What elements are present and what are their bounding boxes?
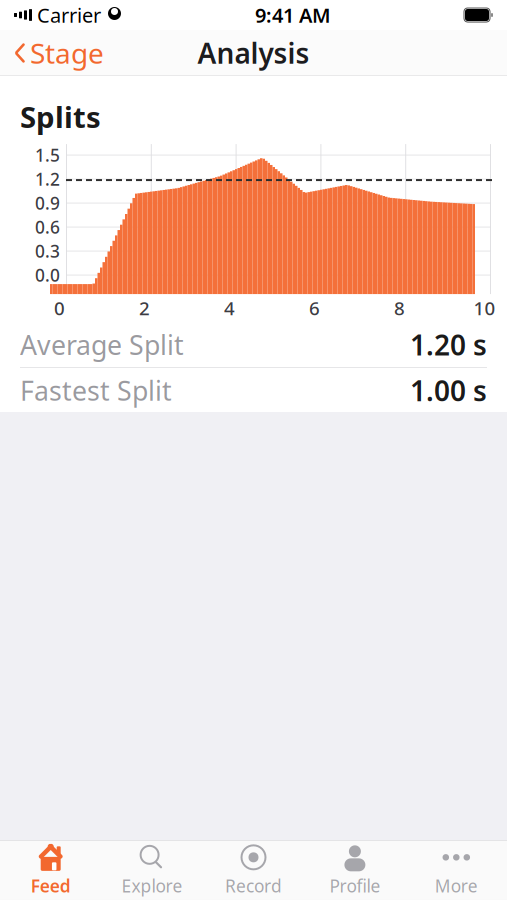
staticText: Carrier [37, 2, 101, 28]
staticText: 0.0 [35, 264, 60, 287]
staticText: Average Split [20, 327, 184, 362]
staticText: More [435, 874, 478, 897]
staticText: Stage [30, 34, 104, 72]
staticText: 0 [54, 296, 65, 320]
staticText: 1.5 [35, 144, 60, 167]
button[interactable]: Explore [101, 841, 203, 900]
button[interactable]: Stage [0, 30, 118, 76]
button[interactable]: Profile [304, 841, 406, 900]
staticText: 0.3 [35, 240, 60, 263]
staticText: Analysis [197, 34, 309, 72]
staticText: 9:41 AM [255, 2, 331, 28]
staticText: 10 [473, 296, 495, 320]
staticText: 1.20 s [410, 326, 487, 363]
staticText: Fastest Split [20, 373, 172, 408]
button[interactable]: More [406, 841, 507, 900]
staticText: 1.2 [35, 168, 60, 191]
staticText: 8 [394, 296, 405, 320]
staticText: 0.6 [35, 216, 60, 239]
staticText: 0.9 [35, 192, 60, 215]
staticText: 2 [139, 296, 150, 320]
button[interactable]: Feed [0, 841, 101, 900]
staticText: Record [225, 874, 282, 897]
button[interactable]: Record [203, 841, 304, 900]
staticText: Explore [122, 874, 183, 897]
staticText: Feed [31, 874, 71, 897]
staticText: 6 [309, 296, 320, 320]
staticText: 1.00 s [410, 372, 487, 409]
staticText: Splits [20, 97, 101, 136]
staticText: 4 [224, 296, 235, 320]
staticText: Profile [329, 874, 380, 897]
